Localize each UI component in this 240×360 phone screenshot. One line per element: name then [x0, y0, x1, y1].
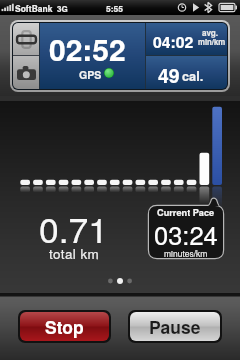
staticText: 0.71: [39, 202, 109, 253]
staticText: 04:02: [153, 30, 194, 53]
button[interactable]: Rotate screen: [13, 23, 39, 55]
staticText: 49: [158, 61, 180, 89]
button[interactable]: Pause: [130, 312, 220, 341]
staticText: Pause: [149, 314, 201, 339]
staticText: Current Pace: [157, 206, 215, 219]
button[interactable]: 02:52: [40, 23, 145, 89]
staticText: SoftBank: [15, 2, 53, 14]
staticText: 02:52: [49, 27, 126, 70]
staticText: 5:55: [106, 2, 124, 14]
button[interactable]: 49: [146, 56, 227, 89]
staticText: Stop: [45, 314, 84, 339]
staticText: minutes/km: [164, 247, 208, 259]
staticText: 3G: [57, 3, 68, 14]
button[interactable]: Current Pace: [146, 195, 227, 263]
staticText: total km: [49, 244, 100, 263]
button[interactable]: Stop: [20, 312, 109, 341]
staticText: GPS: [79, 67, 102, 82]
staticText: 03:24: [154, 216, 218, 253]
button[interactable]: Camera: [13, 56, 39, 89]
staticText: avg.: [202, 27, 219, 39]
staticText: min/km: [198, 36, 226, 47]
staticText: cal.: [182, 67, 204, 85]
button[interactable]: 04:02: [146, 23, 227, 55]
